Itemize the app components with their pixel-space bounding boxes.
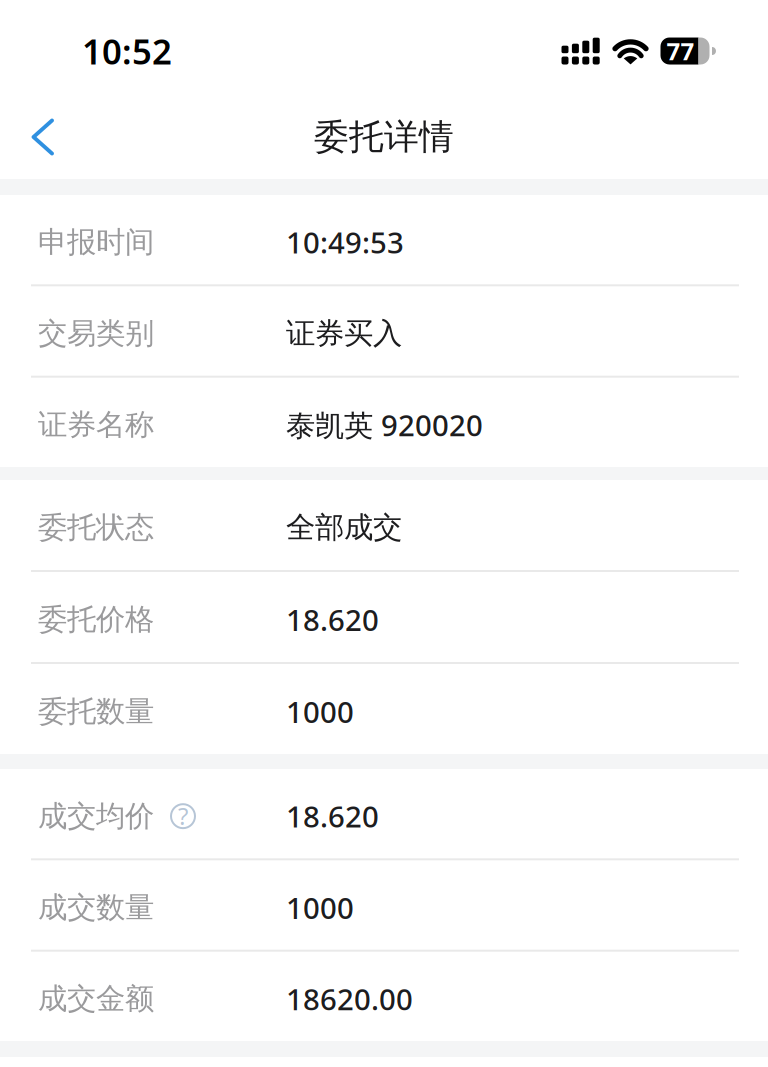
staticText: 18.620 — [286, 797, 379, 836]
staticText: 申报时间 — [38, 224, 154, 260]
staticText: 18.620 — [286, 600, 379, 639]
staticText: 委托数量 — [38, 693, 154, 729]
staticText: 委托状态 — [38, 509, 154, 545]
staticText: 10:52 — [82, 28, 172, 74]
staticText: 成交均价 — [38, 798, 154, 834]
staticText: 委托价格 — [38, 601, 154, 637]
staticText: 成交金额 — [38, 981, 154, 1017]
button[interactable]: Back — [0, 95, 86, 179]
staticText: 交易类别 — [38, 315, 154, 351]
staticText: 18620.00 — [286, 979, 413, 1018]
staticText: 1000 — [286, 692, 354, 731]
staticText: 成交数量 — [38, 889, 154, 925]
staticText: 10:49:53 — [286, 223, 404, 262]
staticText: 77 — [666, 35, 694, 67]
staticText: 全部成交 — [286, 509, 402, 545]
staticText: ? — [178, 800, 188, 832]
staticText: 证券买入 — [286, 315, 402, 351]
staticText: 证券名称 — [38, 407, 154, 443]
staticText: 泰凯英 920020 — [286, 405, 483, 444]
staticText: 委托详情 — [314, 116, 454, 158]
staticText: 1000 — [286, 888, 354, 927]
button[interactable]: About average fill price — [154, 804, 195, 828]
